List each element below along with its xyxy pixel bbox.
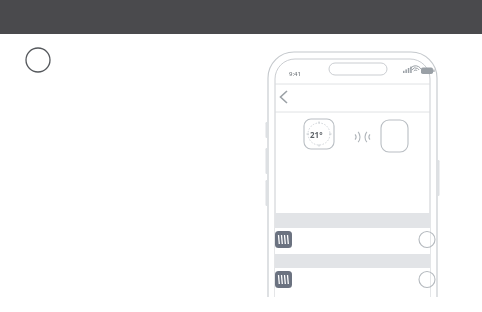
button[interactable] bbox=[268, 268, 438, 293]
button[interactable]: Step marker bbox=[25, 47, 51, 73]
button[interactable]: Back bbox=[272, 88, 294, 110]
button[interactable] bbox=[268, 228, 438, 253]
